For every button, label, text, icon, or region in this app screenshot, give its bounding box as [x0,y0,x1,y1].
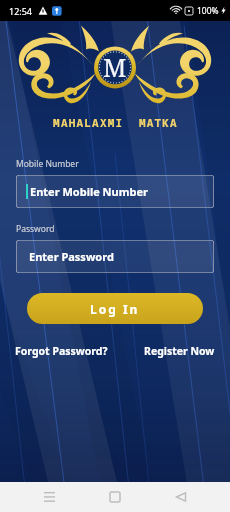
button[interactable]: Forgot Password? [13,342,110,360]
staticText: Forgot Password? [15,344,108,358]
staticText: M [103,50,127,84]
staticText: Enter Mobile Number [30,184,148,199]
staticText: 100% [197,5,219,17]
staticText: 12:54 [9,5,33,17]
button[interactable]: Enter Password [16,240,214,273]
staticText: MAHALAXMI MATKA [53,115,178,130]
staticText: Password [16,223,55,235]
button[interactable]: Log In [27,293,203,324]
button[interactable]: Home [98,482,132,512]
button[interactable]: Register Now [142,342,217,360]
button[interactable]: Recents [32,482,66,512]
staticText: Mobile Number [16,158,79,170]
button[interactable]: Back [164,482,198,512]
staticText: Enter Password [29,249,114,264]
button[interactable]: Enter Mobile Number [16,175,214,208]
staticText: Log In [90,301,140,317]
staticText: Register Now [144,344,215,358]
